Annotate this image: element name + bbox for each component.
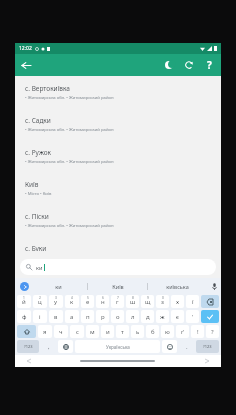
button[interactable]: 4 (65, 295, 79, 308)
staticText: щ (145, 298, 151, 306)
button[interactable]: в (49, 310, 63, 323)
staticText: г (116, 298, 119, 306)
button[interactable]: о (111, 310, 124, 323)
button[interactable]: с. Вертокиївка (15, 79, 221, 106)
staticText: ф (22, 313, 27, 321)
staticText: й (22, 298, 26, 306)
button[interactable]: Help (199, 55, 219, 75)
staticText: ? (207, 58, 212, 72)
staticText: ки (36, 264, 43, 271)
button[interactable]: р (96, 310, 109, 323)
button[interactable]: б (146, 325, 159, 338)
button[interactable]: ь (131, 325, 144, 338)
button[interactable]: 1 (17, 295, 31, 308)
button[interactable]: Recents (203, 357, 211, 365)
button[interactable]: м (86, 325, 99, 338)
button[interactable]: с. Садки (15, 111, 221, 138)
button[interactable]: Back (15, 54, 37, 76)
staticText: 0 (162, 296, 164, 300)
button[interactable]: є (171, 310, 184, 323)
button[interactable]: київська (148, 278, 207, 294)
button[interactable]: ?123 (17, 340, 39, 353)
button[interactable]: ю (161, 325, 174, 338)
staticText: 2 (39, 296, 41, 300)
staticText: 7 (117, 296, 119, 300)
button[interactable]: Shift (17, 325, 36, 338)
staticText: д (146, 313, 150, 321)
button[interactable]: . (179, 340, 194, 353)
button[interactable]: ї (186, 295, 199, 308)
button[interactable]: ки (20, 259, 216, 275)
staticText: е (86, 298, 90, 306)
button[interactable]: 2 (33, 295, 47, 308)
button[interactable]: Home (80, 360, 155, 362)
button[interactable]: 6 (96, 295, 109, 308)
button[interactable]: ! (191, 325, 204, 338)
staticText: ки (55, 283, 62, 290)
button[interactable]: ж (156, 310, 169, 323)
button[interactable]: 0 (156, 295, 169, 308)
button[interactable]: ч (54, 325, 68, 338)
staticText: 6 (102, 296, 104, 300)
button[interactable]: с. Ружок (15, 143, 221, 170)
button[interactable]: 5 (81, 295, 94, 308)
button[interactable]: Refresh (179, 55, 199, 75)
button[interactable]: и (101, 325, 114, 338)
button[interactable]: а (65, 310, 79, 323)
staticText: ц (38, 298, 42, 306)
staticText: с (76, 328, 79, 336)
staticText: ' (192, 313, 194, 321)
button[interactable]: с (70, 325, 84, 338)
staticText: н (101, 298, 105, 306)
button[interactable]: ґ (176, 325, 189, 338)
button[interactable]: Backspace (201, 295, 219, 308)
staticText: 5 (87, 296, 89, 300)
staticText: • Житомирська обл. • Житомирський район (25, 159, 114, 165)
button[interactable]: Enter (201, 310, 219, 323)
staticText: с. Піски (25, 212, 49, 221)
button[interactable]: ?123 (196, 340, 219, 353)
button[interactable]: Українська (75, 340, 160, 353)
staticText: • Житомирська обл. • Житомирський район (25, 127, 114, 133)
staticText: ?123 (203, 344, 212, 349)
button[interactable]: Night mode (159, 55, 179, 75)
staticText: м (90, 328, 95, 336)
button[interactable]: с. Піски (15, 207, 221, 234)
button[interactable]: Back (25, 357, 33, 365)
button[interactable]: т (116, 325, 129, 338)
button[interactable]: Change language (58, 340, 73, 353)
button[interactable]: п (81, 310, 94, 323)
button[interactable]: Voice input (207, 278, 221, 294)
button[interactable]: я (38, 325, 52, 338)
button[interactable]: Expand suggestions (20, 282, 29, 291)
staticText: • Житомирська обл. • Житомирський район (25, 95, 114, 101)
button[interactable]: 8 (126, 295, 139, 308)
staticText: 3 (55, 296, 57, 300)
button[interactable]: Київ (15, 175, 221, 202)
button[interactable]: 9 (141, 295, 154, 308)
staticText: т (121, 328, 124, 336)
staticText: Київ (112, 283, 124, 290)
staticText: к (70, 298, 74, 306)
button[interactable]: 7 (111, 295, 124, 308)
button[interactable]: ки (29, 278, 87, 294)
button[interactable]: ' (186, 310, 199, 323)
staticText: • Місто • Київ (25, 191, 52, 197)
button[interactable]: д (141, 310, 154, 323)
button[interactable]: ? (206, 325, 219, 338)
button[interactable]: с. Буки (15, 239, 221, 256)
button[interactable]: х (171, 295, 184, 308)
staticText: 9 (147, 296, 149, 300)
button[interactable]: Emoji (162, 340, 177, 353)
button[interactable]: , (41, 340, 56, 353)
button[interactable]: ф (17, 310, 31, 323)
button[interactable]: Київ (88, 278, 147, 294)
staticText: , (48, 343, 50, 351)
staticText: Українська (106, 344, 130, 350)
button[interactable]: і (33, 310, 47, 323)
staticText: р (101, 313, 105, 321)
staticText: у (54, 298, 58, 306)
button[interactable]: л (126, 310, 139, 323)
staticText: ь (136, 328, 140, 336)
button[interactable]: 3 (49, 295, 63, 308)
